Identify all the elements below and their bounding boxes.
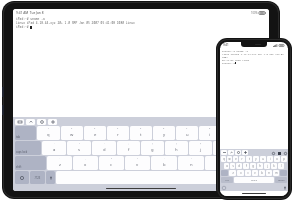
- button[interactable]: Keyboard tool 1: [26, 119, 35, 125]
- button[interactable]: caps lock: [15, 141, 41, 155]
- button[interactable]: n: [266, 170, 272, 176]
- button[interactable]: k: [271, 163, 277, 169]
- button[interactable]: -: [42, 141, 66, 155]
- button[interactable]: 4: [107, 126, 129, 140]
- button[interactable]: c: [245, 170, 251, 176]
- button[interactable]: h: [257, 163, 263, 169]
- button[interactable]: Keyboard tool 0: [15, 119, 24, 125]
- button[interactable]: d: [236, 163, 242, 169]
- button[interactable]: w: [227, 156, 232, 162]
- staticText: 9:41 AM Tue Jan 8: [16, 11, 44, 15]
- staticText: h: [259, 164, 261, 168]
- button[interactable]: v: [252, 170, 258, 176]
- staticText: tab: [16, 135, 20, 139]
- staticText: .?123: [34, 176, 41, 180]
- button[interactable]: Emoji: [221, 185, 226, 190]
- button[interactable]: 5: [130, 126, 152, 140]
- button[interactable]: ,: [73, 156, 98, 170]
- button[interactable]: Space: [56, 171, 256, 184]
- button[interactable]: !: [125, 156, 150, 170]
- button[interactable]: x: [237, 170, 244, 176]
- staticText: -: [54, 142, 55, 145]
- button[interactable]: Action 2: [283, 151, 287, 155]
- button[interactable]: p: [281, 156, 287, 162]
- button[interactable]: shift: [15, 156, 46, 170]
- button[interactable]: ": [178, 156, 204, 170]
- button[interactable]: s: [230, 163, 235, 169]
- button[interactable]: 3: [84, 126, 106, 140]
- button[interactable]: Tool 2: [235, 150, 241, 155]
- button[interactable]: /: [67, 141, 91, 155]
- button[interactable]: u: [260, 156, 266, 162]
- button[interactable]: Microphone: [282, 185, 287, 190]
- button[interactable]: 1: [37, 126, 60, 140]
- staticText: 05:41:08 1080 Linux: [222, 58, 250, 61]
- staticText: h: [175, 147, 178, 153]
- staticText: c: [247, 171, 249, 175]
- staticText: d: [103, 147, 106, 153]
- button[interactable]: i: [267, 156, 273, 162]
- button[interactable]: f: [243, 163, 249, 169]
- button[interactable]: 2: [61, 126, 83, 140]
- button[interactable]: return: [275, 177, 287, 183]
- button[interactable]: tab: [15, 126, 36, 140]
- button[interactable]: :: [92, 141, 116, 155]
- button[interactable]: space: [234, 177, 274, 183]
- staticText: iPad:~# uname -a: [16, 17, 45, 21]
- staticText: n: [190, 162, 193, 168]
- button[interactable]: j: [264, 163, 270, 169]
- button[interactable]: 7: [176, 126, 198, 140]
- button[interactable]: 8: [199, 126, 221, 140]
- staticText: r: [241, 157, 243, 161]
- button[interactable]: m: [273, 170, 279, 176]
- button[interactable]: $: [189, 141, 212, 155]
- button[interactable]: .?123: [30, 171, 45, 184]
- button[interactable]: &: [213, 141, 236, 155]
- button[interactable]: z: [229, 170, 236, 176]
- button[interactable]: 6: [153, 126, 175, 140]
- button[interactable]: e: [233, 156, 238, 162]
- staticText: n: [268, 171, 270, 175]
- button[interactable]: Action 0: [271, 151, 275, 155]
- button[interactable]: Action 1: [277, 151, 281, 155]
- button[interactable]: ): [165, 141, 188, 155]
- button[interactable]: Tool 3: [242, 150, 248, 155]
- button[interactable]: Microphone: [46, 171, 55, 184]
- button[interactable]: Keyboard tool 3: [48, 119, 57, 125]
- button[interactable]: a: [224, 163, 229, 169]
- button[interactable]: Return: [257, 171, 267, 184]
- button[interactable]: !: [232, 156, 258, 170]
- button[interactable]: @: [237, 141, 260, 155]
- button[interactable]: _: [205, 156, 231, 170]
- button[interactable]: y: [253, 156, 259, 162]
- button[interactable]: Tool 1: [228, 150, 234, 155]
- button[interactable]: .: [47, 156, 72, 170]
- button[interactable]: g: [250, 163, 256, 169]
- button[interactable]: l: [278, 163, 284, 169]
- button[interactable]: q: [221, 156, 226, 162]
- button[interactable]: o: [274, 156, 280, 162]
- button[interactable]: Keyboard tool 2: [37, 119, 46, 125]
- staticText: space: [251, 179, 257, 182]
- staticText: u: [186, 132, 189, 138]
- button[interactable]: (: [141, 141, 164, 155]
- button[interactable]: ;: [117, 141, 140, 155]
- staticText: ': [245, 162, 246, 168]
- button[interactable]: ?: [99, 156, 124, 170]
- button[interactable]: r: [239, 156, 245, 162]
- button[interactable]: t: [246, 156, 252, 162]
- staticText: b: [261, 171, 263, 175]
- button[interactable]: b: [259, 170, 265, 176]
- button[interactable]: 123: [221, 177, 233, 183]
- staticText: 3: [94, 127, 96, 130]
- staticText: t: [249, 157, 250, 161]
- button[interactable]: Tool 0: [221, 150, 227, 155]
- button[interactable]: ': [151, 156, 177, 170]
- staticText: 9:41: [223, 43, 229, 47]
- staticText: 8: [209, 127, 211, 130]
- button[interactable]: Emoji: [15, 171, 29, 184]
